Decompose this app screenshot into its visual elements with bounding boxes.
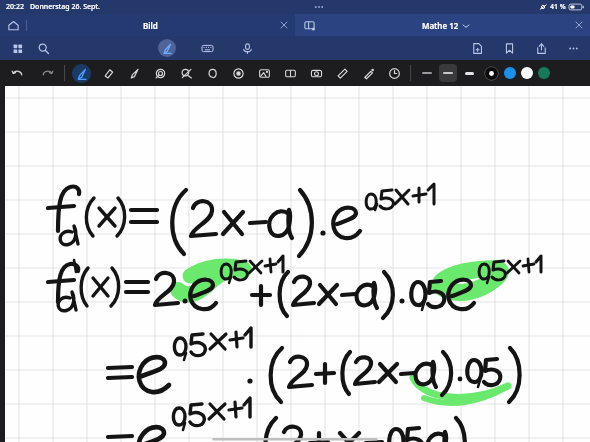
staticText: Bild	[143, 20, 158, 31]
button[interactable]: Home	[0, 14, 295, 36]
button[interactable]: Close tab	[568, 14, 590, 36]
button[interactable]: Blue colour	[504, 67, 516, 79]
button[interactable]: Image	[255, 64, 273, 82]
button[interactable]: Thin stroke	[418, 64, 436, 82]
button[interactable]: Search	[34, 39, 52, 57]
button[interactable]: Keyboard	[198, 39, 216, 57]
button[interactable]: Sticker	[281, 64, 299, 82]
button[interactable]: Undo	[8, 64, 26, 82]
button[interactable]: Camera	[307, 64, 325, 82]
staticText: Donnerstag 26. Sept.	[30, 2, 100, 12]
button[interactable]: Black colour	[484, 66, 499, 81]
button[interactable]: Thumbnails	[8, 39, 26, 57]
button[interactable]: Shapes	[151, 64, 169, 82]
button[interactable]: History	[385, 64, 403, 82]
button[interactable]: Bookmark	[500, 39, 518, 57]
button[interactable]: Document view	[295, 14, 323, 36]
button[interactable]: Select	[177, 64, 195, 82]
button[interactable]: Green colour	[538, 67, 550, 79]
button[interactable]: Eraser	[99, 64, 117, 82]
button[interactable]: Highlighter	[125, 64, 143, 82]
button[interactable]: Lasso	[203, 64, 221, 82]
button[interactable]: Pointer	[229, 64, 247, 82]
staticText: 41 %	[550, 2, 566, 12]
button[interactable]: White colour	[521, 67, 533, 79]
button[interactable]: Redo	[38, 64, 56, 82]
button[interactable]: More	[564, 39, 582, 57]
staticText: 20:22	[6, 2, 24, 12]
button[interactable]: Pen	[72, 64, 91, 83]
button[interactable]: Laser	[359, 64, 377, 82]
button[interactable]: Ruler	[333, 64, 351, 82]
button[interactable]: Share	[532, 39, 550, 57]
button[interactable]: Medium stroke	[439, 64, 457, 82]
staticText: Mathe 12	[422, 20, 459, 31]
button[interactable]: Microphone	[238, 39, 256, 57]
button[interactable]: Document view	[295, 14, 590, 36]
button[interactable]: Thick stroke	[460, 64, 478, 82]
button[interactable]: Close tab	[273, 14, 295, 36]
button[interactable]: Home	[0, 14, 26, 36]
button[interactable]: Add page	[468, 39, 486, 57]
button[interactable]: Pen mode	[158, 39, 176, 57]
